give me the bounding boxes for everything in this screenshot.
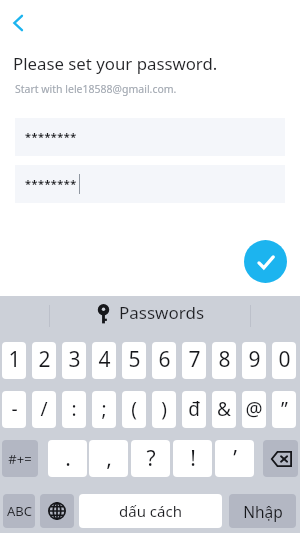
staticText: 0 xyxy=(278,345,291,374)
button[interactable]: Passwords xyxy=(97,293,205,333)
staticText: ’ xyxy=(233,444,237,473)
button[interactable]: ? xyxy=(131,440,170,477)
staticText: . xyxy=(65,444,71,473)
button[interactable]: & xyxy=(212,391,236,428)
button[interactable]: 4 xyxy=(92,342,116,379)
button[interactable]: ABC xyxy=(3,494,35,528)
staticText: dấu cách xyxy=(119,501,182,521)
button[interactable]: Backspace xyxy=(263,440,298,477)
button[interactable]: ’ xyxy=(215,440,254,477)
button[interactable]: 0 xyxy=(272,342,296,379)
staticText: / xyxy=(40,396,48,422)
button[interactable]: : xyxy=(62,391,86,428)
staticText: Start with lele18588@gmail.com. xyxy=(15,82,177,96)
staticText: 2 xyxy=(38,345,51,374)
staticText: ) xyxy=(161,396,167,422)
button[interactable]: 2 xyxy=(32,342,56,379)
staticText: 9 xyxy=(248,345,261,374)
staticText: ? xyxy=(146,444,156,473)
staticText: ( xyxy=(131,396,137,422)
button[interactable]: Back xyxy=(3,8,33,38)
staticText: ” xyxy=(281,396,288,422)
staticText: Please set your password. xyxy=(13,52,218,75)
staticText: 7 xyxy=(188,345,201,374)
staticText: ******** xyxy=(25,176,77,191)
staticText: @ xyxy=(245,396,263,422)
button[interactable]: 6 xyxy=(152,342,176,379)
button[interactable]: đ xyxy=(182,391,206,428)
staticText: ; xyxy=(101,396,107,422)
button[interactable]: ******** xyxy=(15,118,285,156)
button[interactable]: - xyxy=(2,391,26,428)
staticText: 4 xyxy=(98,345,111,374)
button[interactable]: dấu cách xyxy=(79,494,222,528)
button[interactable]: 8 xyxy=(212,342,236,379)
button[interactable]: 3 xyxy=(62,342,86,379)
button[interactable]: 5 xyxy=(122,342,146,379)
staticText: : xyxy=(71,396,77,422)
staticText: 8 xyxy=(218,345,231,374)
button[interactable]: Change keyboard language xyxy=(40,494,74,528)
staticText: Nhập xyxy=(243,501,283,522)
button[interactable]: ******** xyxy=(15,165,285,203)
button[interactable]: Confirm xyxy=(244,240,287,283)
button[interactable]: 7 xyxy=(182,342,206,379)
button[interactable]: @ xyxy=(242,391,266,428)
button[interactable]: . xyxy=(48,440,87,477)
button[interactable]: ; xyxy=(92,391,116,428)
button[interactable]: ) xyxy=(152,391,176,428)
staticText: đ xyxy=(188,396,200,422)
button[interactable]: Nhập xyxy=(229,494,296,528)
staticText: 6 xyxy=(158,345,171,374)
staticText: - xyxy=(11,396,18,422)
staticText: 5 xyxy=(128,345,141,374)
button[interactable]: #+= xyxy=(2,440,38,477)
button[interactable]: 9 xyxy=(242,342,266,379)
staticText: ******** xyxy=(25,129,77,144)
button[interactable]: ( xyxy=(122,391,146,428)
staticText: ! xyxy=(190,444,196,473)
button[interactable]: ! xyxy=(173,440,212,477)
staticText: 3 xyxy=(68,345,81,374)
staticText: 1 xyxy=(8,345,21,374)
staticText: Passwords xyxy=(119,301,205,324)
staticText: & xyxy=(217,396,231,422)
button[interactable]: / xyxy=(32,391,56,428)
button[interactable]: ” xyxy=(272,391,296,428)
staticText: #+= xyxy=(8,450,32,468)
button[interactable]: 1 xyxy=(2,342,26,379)
staticText: , xyxy=(106,444,112,473)
button[interactable]: , xyxy=(89,440,128,477)
staticText: ABC xyxy=(7,502,32,520)
